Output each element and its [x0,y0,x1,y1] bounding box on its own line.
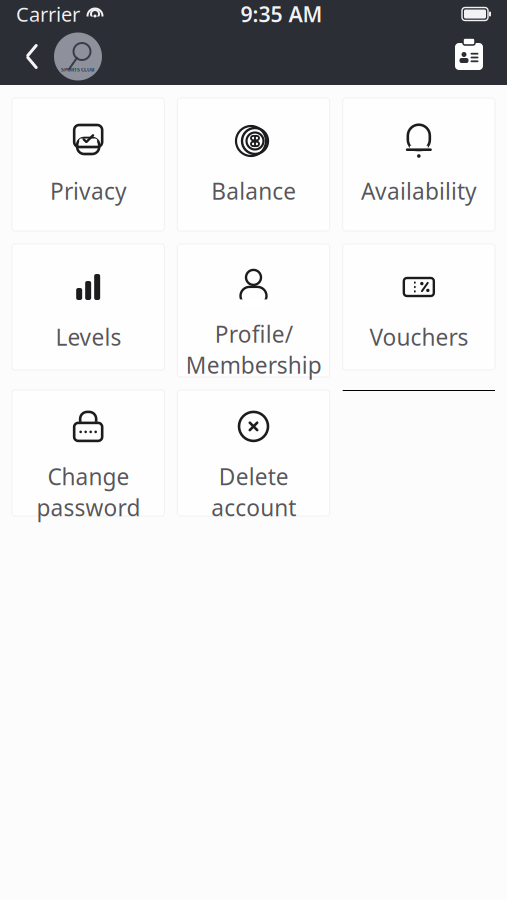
button[interactable]: Membership card [445,34,493,78]
button[interactable]: Profile/ Membership [177,244,330,377]
button[interactable]: Availability [343,98,495,231]
button[interactable]: Back [14,36,50,76]
staticText: Balance [211,176,296,206]
staticText: Profile/ Membership [185,319,321,380]
staticText: Vouchers [369,322,468,352]
staticText: Availability [361,176,477,206]
button[interactable]: Privacy [12,98,164,231]
button[interactable]: Levels [12,244,164,370]
button[interactable]: Delete account [177,390,330,516]
staticText: 9:35 AM [240,0,322,28]
staticText: Change password [36,461,140,523]
button[interactable]: Change password [12,390,164,516]
staticText: SPORTS CLUB [61,66,95,73]
button[interactable]: Vouchers [343,244,495,370]
staticText: Privacy [50,176,127,206]
button[interactable]: Balance [177,98,330,231]
staticText: Carrier [16,1,80,27]
staticText: Levels [55,322,121,352]
staticText: Delete account [211,461,296,523]
